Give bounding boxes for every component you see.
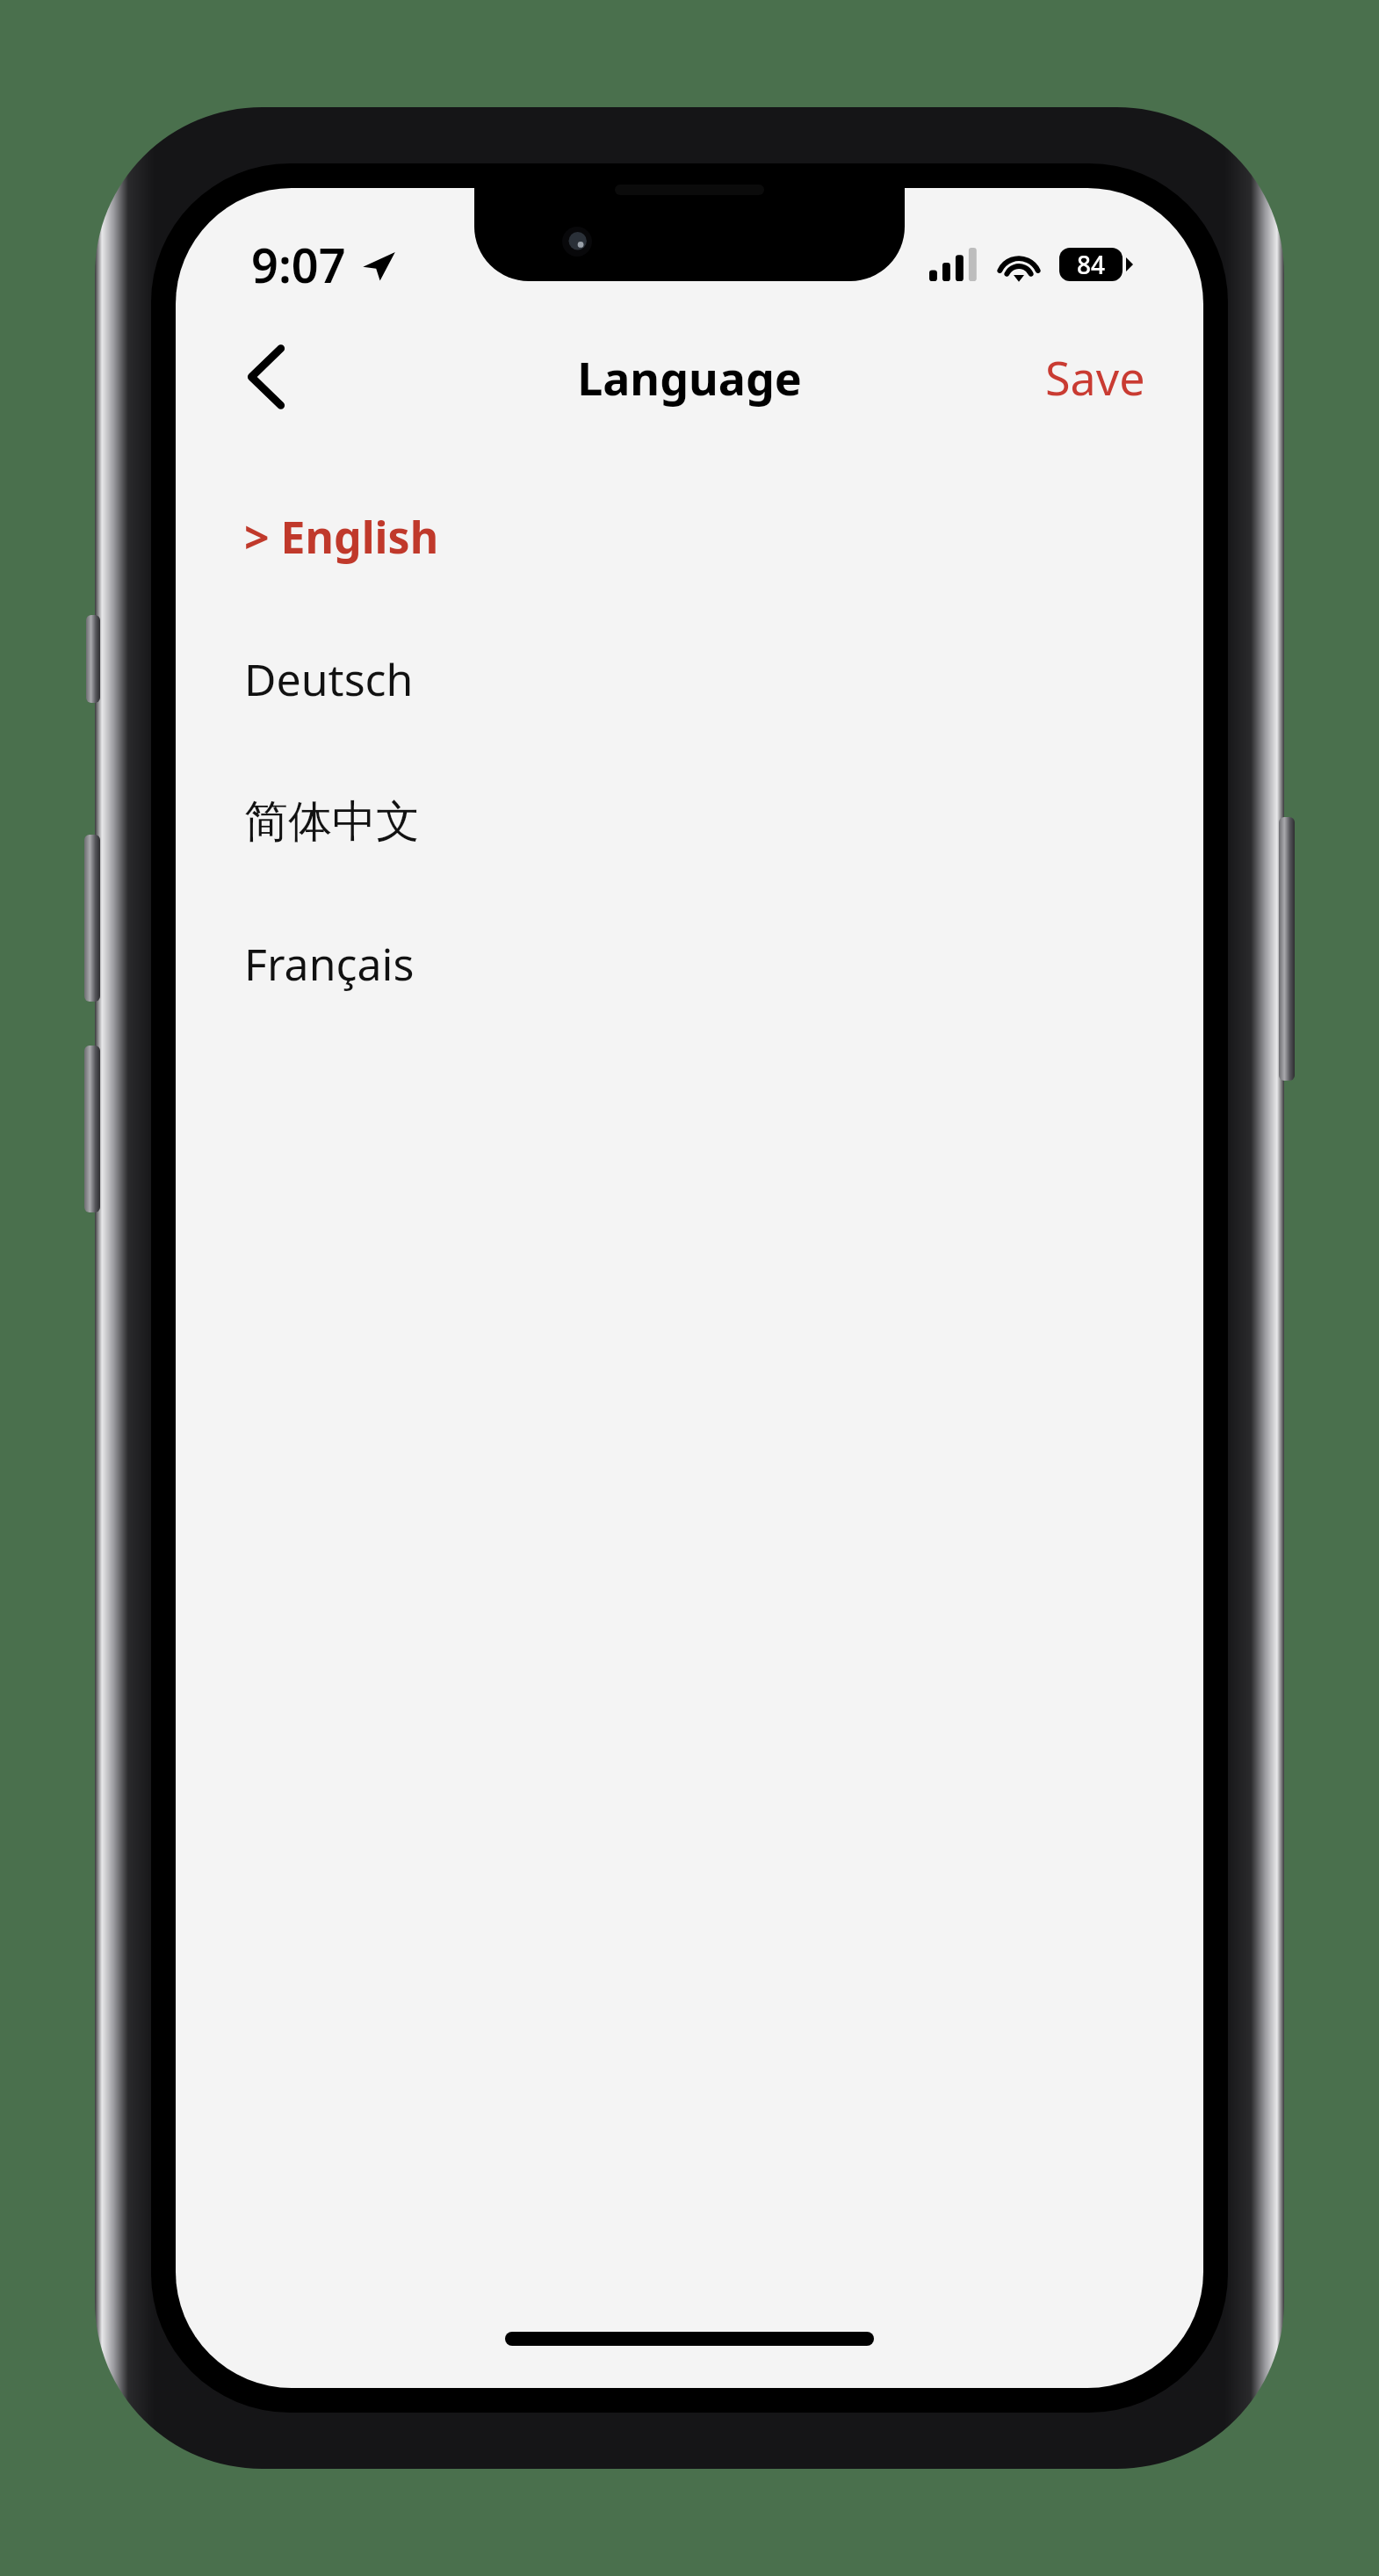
button[interactable]: 简体中文 [176,750,1203,893]
staticText: 84 [1077,248,1106,281]
staticText: Language [577,346,802,409]
staticText: > English [244,507,439,567]
staticText: 简体中文 [244,794,420,850]
button[interactable]: Save [1036,334,1154,421]
staticText: 9:07 [251,232,346,297]
button[interactable]: Deutsch [176,608,1203,750]
staticText: Deutsch [244,649,414,709]
staticText: Français [244,934,415,994]
button[interactable]: > English [176,466,1203,608]
button[interactable]: Back [218,329,314,425]
staticText: Save [1045,346,1145,409]
button[interactable]: Français [176,893,1203,1035]
